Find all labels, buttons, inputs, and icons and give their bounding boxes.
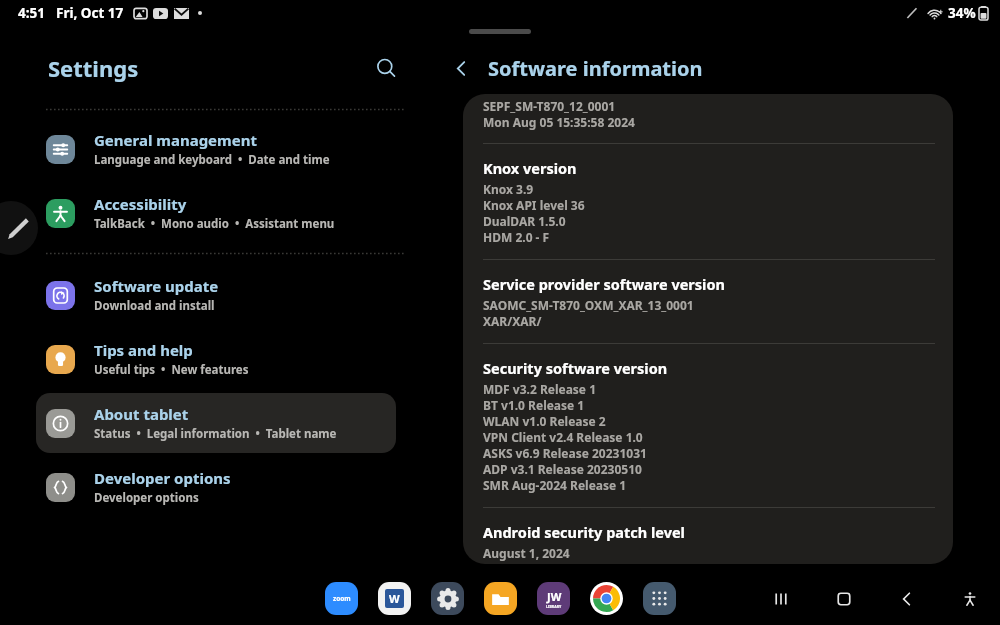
staticText: General management (94, 130, 257, 150)
button[interactable]: JW Library (535, 580, 571, 616)
staticText: Software information (488, 55, 703, 82)
staticText: MDF v3.2 Release 1 (483, 381, 597, 397)
staticText: Knox version (483, 158, 577, 178)
button[interactable]: My Files (482, 580, 518, 616)
button[interactable]: Knox version (483, 158, 935, 245)
button[interactable]: Chrome (588, 580, 624, 616)
staticText: XAR/XAR/ (483, 313, 542, 329)
staticText: HDM 2.0 - F (483, 229, 550, 245)
button[interactable]: Software update (36, 265, 396, 325)
staticText: Service provider software version (483, 274, 725, 294)
staticText: W (389, 591, 400, 606)
staticText: Status • Legal information • Tablet name (94, 426, 337, 442)
button[interactable]: Service provider software version (483, 274, 935, 329)
button[interactable]: Settings (429, 580, 465, 616)
staticText: Accessibility (94, 194, 187, 214)
button[interactable]: Navigate up (442, 49, 480, 87)
staticText: ADP v3.1 Release 20230510 (483, 461, 642, 477)
staticText: JW (547, 589, 562, 604)
button[interactable]: S Pen (0, 201, 38, 255)
button[interactable]: Security software version (483, 358, 935, 493)
staticText: Language and keyboard • Date and time (94, 152, 330, 168)
button[interactable]: Recent apps (764, 582, 798, 616)
button[interactable]: Home (827, 582, 861, 616)
button[interactable]: Tips and help (36, 329, 396, 389)
staticText: WLAN v1.0 Release 2 (483, 413, 606, 429)
staticText: Fri, Oct 17 (56, 4, 124, 22)
staticText: Knox API level 36 (483, 197, 585, 213)
staticText: Android security patch level (483, 522, 685, 542)
staticText: Tips and help (94, 340, 193, 360)
staticText: About tablet (94, 404, 189, 424)
staticText: Developer options (94, 490, 199, 506)
staticText: VPN Client v2.4 Release 1.0 (483, 429, 643, 445)
staticText: 4:51 (18, 4, 45, 22)
staticText: DualDAR 1.5.0 (483, 213, 566, 229)
staticText: Mon Aug 05 15:35:58 2024 (483, 114, 635, 130)
button[interactable]: Back (890, 582, 924, 616)
button[interactable]: Microsoft Word (376, 580, 412, 616)
button[interactable]: Android security patch level (483, 522, 935, 561)
staticText: 34% (948, 4, 976, 22)
staticText: LIBRARY (546, 604, 562, 609)
staticText: TalkBack • Mono audio • Assistant menu (94, 216, 335, 232)
staticText: BT v1.0 Release 1 (483, 397, 585, 413)
staticText: Useful tips • New features (94, 362, 249, 378)
staticText: zoom (333, 594, 351, 603)
button[interactable]: Developer options (36, 457, 396, 517)
staticText: SAOMC_SM-T870_OXM_XAR_13_0001 (483, 297, 694, 313)
button[interactable]: General management (36, 119, 396, 179)
staticText: August 1, 2024 (483, 545, 570, 561)
staticText: Security software version (483, 358, 668, 378)
button[interactable]: Zoom (323, 580, 359, 616)
staticText: Settings (48, 53, 139, 83)
staticText: SMR Aug-2024 Release 1 (483, 477, 627, 493)
staticText: ASKS v6.9 Release 20231031 (483, 445, 647, 461)
staticText: Developer options (94, 468, 231, 488)
staticText: Download and install (94, 298, 215, 314)
staticText: SEPF_SM-T870_12_0001 (483, 98, 616, 114)
button[interactable]: Search settings (366, 48, 406, 88)
staticText: Software update (94, 276, 219, 296)
staticText: Knox 3.9 (483, 181, 534, 197)
button[interactable]: About tablet (36, 393, 396, 453)
button[interactable]: Accessibility (36, 183, 396, 243)
button[interactable]: Accessibility (953, 582, 987, 616)
button[interactable]: Apps (641, 580, 677, 616)
